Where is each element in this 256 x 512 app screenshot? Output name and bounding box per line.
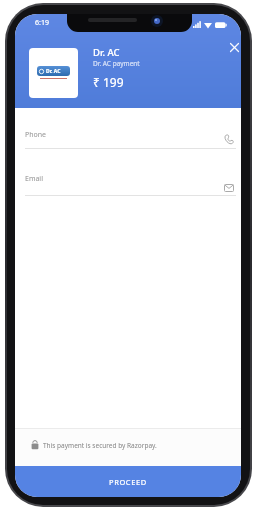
button[interactable]: Dr. AC <box>29 48 78 98</box>
staticText: Dr. AC <box>93 46 120 59</box>
staticText: Dr. AC <box>46 68 61 75</box>
button[interactable]: Phone <box>15 121 241 163</box>
button[interactable] <box>224 37 241 57</box>
staticText: 6:19 <box>35 18 49 28</box>
staticText: Email <box>25 174 43 184</box>
button[interactable]: Email <box>15 166 241 208</box>
button[interactable]: PROCEED <box>15 466 241 497</box>
staticText: This payment is secured by Razorpay. <box>43 441 157 450</box>
staticText: PROCEED <box>109 477 147 487</box>
staticText: Phone <box>25 130 47 140</box>
staticText: ₹ 199 <box>93 74 124 90</box>
staticText: Dr. AC payment <box>93 59 140 68</box>
